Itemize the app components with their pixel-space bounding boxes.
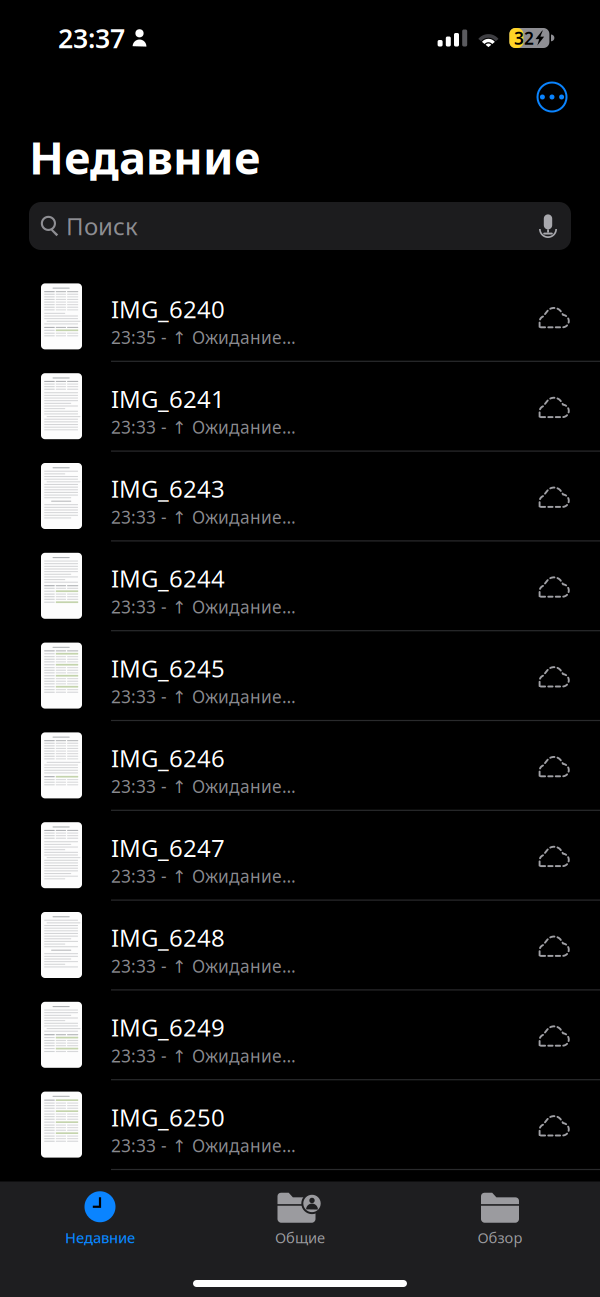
staticText: 23:33 - ↑ Ожидание… bbox=[111, 954, 296, 977]
button[interactable]: IMG_6243 bbox=[0, 452, 600, 541]
staticText: IMG_6250 bbox=[111, 1101, 225, 1133]
staticText: IMG_6241 bbox=[111, 383, 225, 415]
staticText: Обзор bbox=[477, 1228, 522, 1247]
staticText: 23:33 - ↑ Ожидание… bbox=[111, 595, 296, 618]
button[interactable]: IMG_6246 bbox=[0, 721, 600, 811]
button[interactable]: Обзор bbox=[400, 1186, 600, 1252]
button[interactable]: IMG_6245 bbox=[0, 631, 600, 721]
staticText: IMG_6245 bbox=[111, 652, 225, 684]
button[interactable]: IMG_6247 bbox=[0, 811, 600, 901]
staticText: IMG_6248 bbox=[111, 922, 225, 953]
staticText: IMG_6243 bbox=[111, 473, 225, 504]
staticText: Недавние bbox=[65, 1228, 135, 1247]
staticText: 32 bbox=[514, 26, 534, 49]
button[interactable]: IMG_6249 bbox=[0, 990, 600, 1080]
staticText: Общие bbox=[275, 1228, 325, 1247]
staticText: 23:33 - ↑ Ожидание… bbox=[111, 775, 296, 798]
staticText: IMG_6249 bbox=[111, 1011, 225, 1043]
staticText: 23:33 - ↑ Ожидание… bbox=[111, 1044, 296, 1067]
staticText: IMG_6247 bbox=[111, 832, 225, 864]
staticText: 23:33 - ↑ Ожидание… bbox=[111, 505, 296, 528]
staticText: 23:33 - ↑ Ожидание… bbox=[111, 685, 296, 708]
staticText: Недавние bbox=[29, 127, 260, 187]
staticText: 23:33 - ↑ Ожидание… bbox=[111, 865, 296, 888]
staticText: 23:35 - ↑ Ожидание… bbox=[111, 326, 296, 349]
staticText: Поиск bbox=[66, 210, 138, 242]
staticText: IMG_6240 bbox=[111, 293, 225, 325]
button[interactable]: Поиск bbox=[29, 202, 571, 250]
button[interactable]: IMG_6250 bbox=[0, 1080, 600, 1170]
staticText: 23:33 - ↑ Ожидание… bbox=[111, 1134, 296, 1157]
button[interactable]: IMG_6244 bbox=[0, 541, 600, 631]
staticText: 23:37 bbox=[58, 20, 125, 56]
button[interactable]: Ещё bbox=[528, 73, 576, 121]
staticText: 23:33 - ↑ Ожидание… bbox=[111, 416, 296, 439]
button[interactable]: IMG_6248 bbox=[0, 901, 600, 990]
button[interactable]: IMG_6240 bbox=[0, 272, 600, 362]
button[interactable]: IMG_6241 bbox=[0, 362, 600, 452]
staticText: IMG_6246 bbox=[111, 742, 225, 774]
button[interactable]: Общие bbox=[200, 1186, 400, 1252]
staticText: IMG_6244 bbox=[111, 562, 225, 594]
button[interactable]: Недавние bbox=[0, 1186, 200, 1252]
